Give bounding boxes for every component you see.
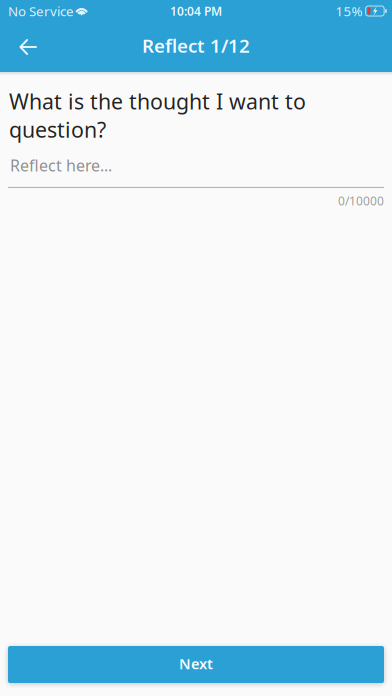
staticText: Next bbox=[179, 654, 213, 673]
button[interactable]: Reflect here... bbox=[0, 144, 392, 188]
staticText: No Service bbox=[8, 2, 74, 20]
button[interactable]: Next bbox=[8, 646, 384, 683]
staticText: Reflect 1/12 bbox=[142, 33, 250, 58]
staticText: 10:04 PM bbox=[170, 3, 222, 19]
staticText: What is the thought I want to question? bbox=[9, 87, 306, 144]
button[interactable]: Back bbox=[8, 25, 48, 69]
staticText: 0/10000 bbox=[338, 193, 384, 209]
staticText: 15% bbox=[335, 2, 362, 20]
staticText: Reflect here... bbox=[10, 155, 112, 176]
